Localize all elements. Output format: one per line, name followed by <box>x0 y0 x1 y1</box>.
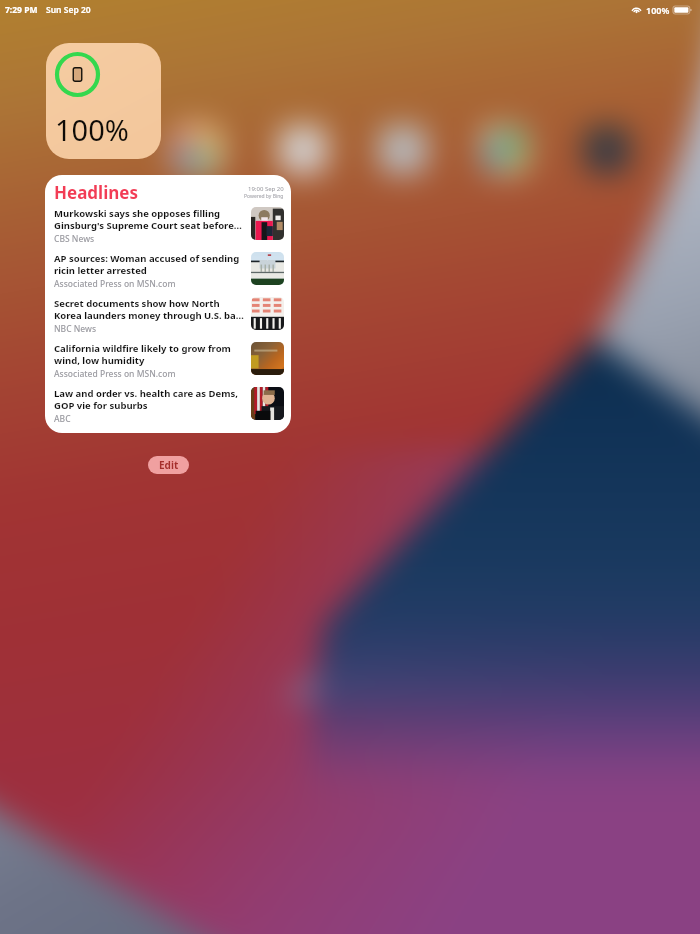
staticText: Associated Press on MSN.com <box>54 278 176 290</box>
button[interactable]: Headlines <box>45 175 291 433</box>
staticText: AP sources: Woman accused of sending ric… <box>54 252 240 277</box>
button[interactable]: California wildfire likely to grow from … <box>54 340 284 385</box>
staticText: Secret documents show how North Korea la… <box>54 297 244 322</box>
button[interactable]: Secret documents show how North Korea la… <box>54 295 284 340</box>
staticText: Headlines <box>54 181 138 204</box>
staticText: ABC <box>54 413 71 425</box>
staticText: NBC News <box>54 323 97 335</box>
staticText: 19:00 Sep 20 <box>248 185 284 193</box>
staticText: 100% <box>646 4 670 16</box>
button[interactable]: Murkowski says she opposes filling Ginsb… <box>54 205 284 250</box>
staticText: 100% <box>55 110 129 149</box>
button[interactable]: AP sources: Woman accused of sending ric… <box>54 250 284 295</box>
staticText: Associated Press on MSN.com <box>54 368 176 380</box>
button[interactable]: Law and order vs. health care as Dems, G… <box>54 385 284 430</box>
staticText: Law and order vs. health care as Dems, G… <box>54 387 238 412</box>
staticText: Murkowski says she opposes filling Ginsb… <box>54 207 242 232</box>
staticText: 7:29 PM <box>5 4 38 16</box>
staticText: Edit <box>159 458 179 472</box>
staticText: CBS News <box>54 233 95 245</box>
staticText: Powered by Bing <box>244 193 284 200</box>
staticText: Sun Sep 20 <box>46 4 91 16</box>
button[interactable]: 100% <box>46 43 161 159</box>
staticText: California wildfire likely to grow from … <box>54 342 231 367</box>
button[interactable]: Edit <box>148 456 189 474</box>
